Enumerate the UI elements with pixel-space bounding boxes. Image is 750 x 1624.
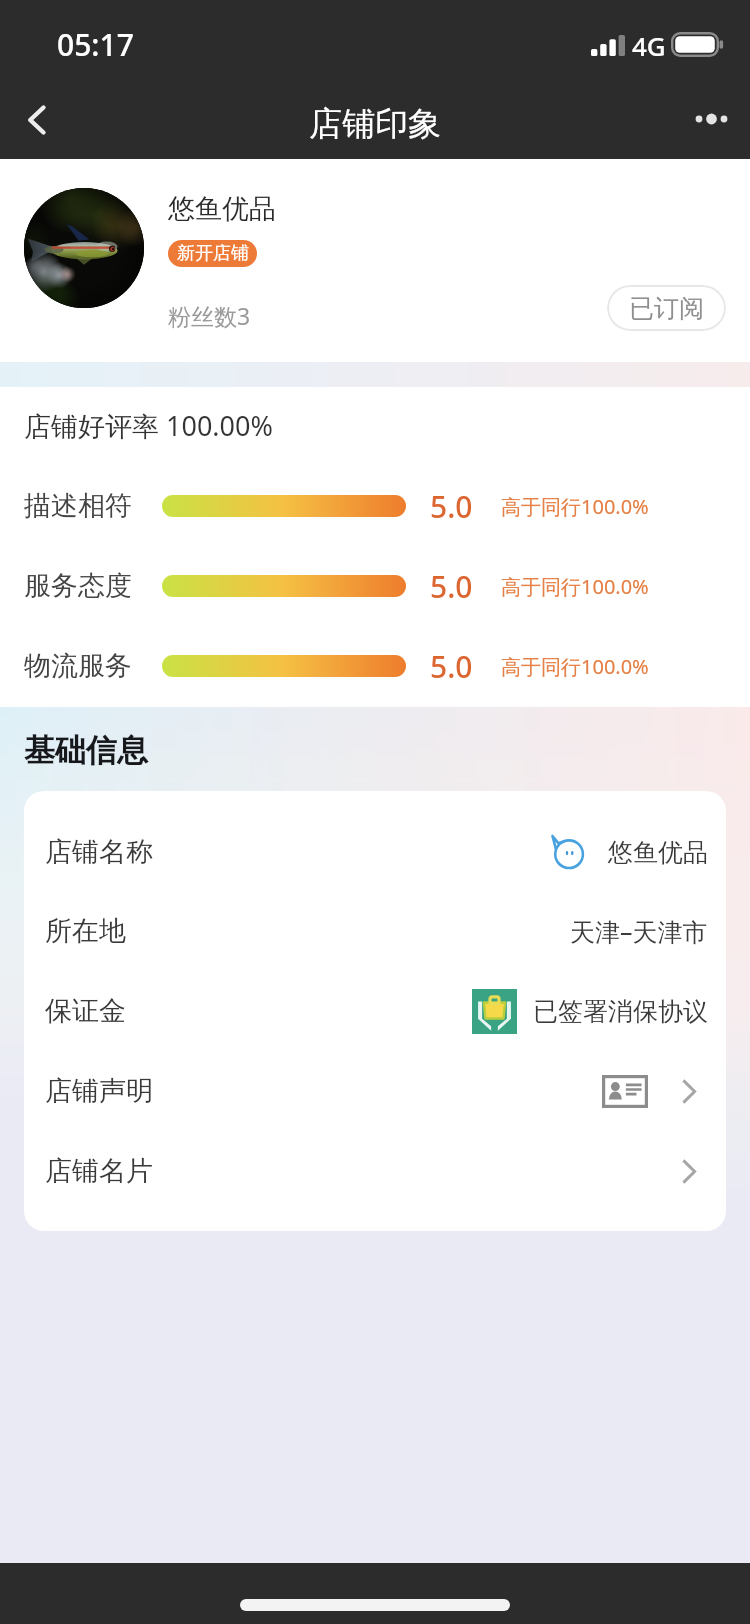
staticText: 物流服务 xyxy=(24,649,132,683)
button[interactable]: 店铺名片 xyxy=(24,1141,726,1201)
staticText: 悠鱼优品 xyxy=(608,837,708,868)
staticText: 悠鱼优品 xyxy=(168,192,276,226)
staticText: 店铺声明 xyxy=(45,1074,153,1108)
button[interactable]: 店铺声明 xyxy=(24,1061,726,1121)
staticText: 5.0 xyxy=(430,486,473,527)
staticText: 4G xyxy=(632,28,666,58)
staticText: 05:17 xyxy=(57,24,134,64)
staticText: 基础信息 xyxy=(24,731,148,770)
staticText: 店铺名称 xyxy=(45,835,153,869)
button[interactable]: Back xyxy=(1,84,71,155)
staticText: 新开店铺 xyxy=(177,242,249,265)
staticText: 保证金 xyxy=(45,994,126,1028)
staticText: 店铺印象 xyxy=(309,103,441,145)
staticText: 5.0 xyxy=(430,646,473,687)
staticText: 已签署消保协议 xyxy=(533,996,708,1027)
staticText: 高于同行100.0% xyxy=(501,493,649,520)
staticText: 描述相符 xyxy=(24,489,132,523)
staticText: 所在地 xyxy=(45,914,126,948)
staticText: 5.0 xyxy=(430,566,473,607)
staticText: 已订阅 xyxy=(629,293,704,324)
button[interactable]: 所在地 xyxy=(24,901,726,961)
staticText: 高于同行100.0% xyxy=(501,573,649,600)
staticText: 店铺好评率 100.00% xyxy=(24,407,273,444)
staticText: 店铺名片 xyxy=(45,1154,153,1188)
button[interactable]: More options xyxy=(679,83,750,154)
staticText: 天津–天津市 xyxy=(570,914,708,948)
button[interactable]: 店铺名称 xyxy=(24,822,726,882)
staticText: 粉丝数3 xyxy=(168,300,251,331)
staticText: 高于同行100.0% xyxy=(501,653,649,680)
button[interactable]: 已订阅 xyxy=(607,285,726,331)
staticText: 服务态度 xyxy=(24,569,132,603)
button[interactable]: 保证金 xyxy=(24,981,726,1041)
